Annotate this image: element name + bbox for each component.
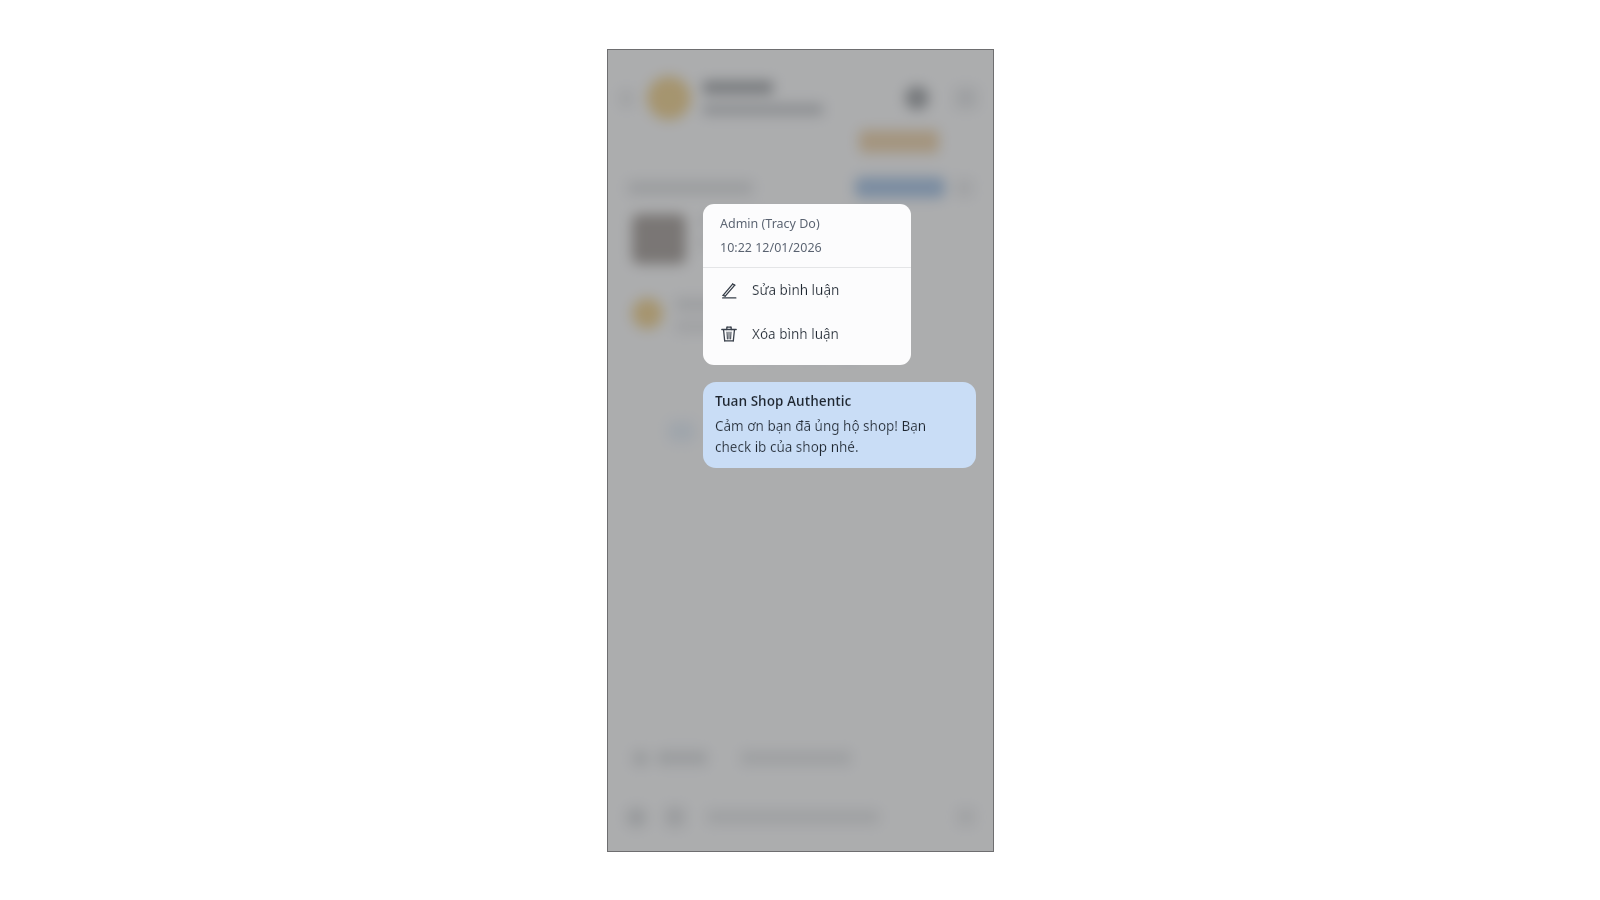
- staticText: Tuan Shop Authentic: [715, 392, 852, 410]
- staticText: 10:22 12/01/2026: [720, 239, 822, 256]
- staticText: Cảm ơn bạn đã ủng hộ shop! Bạn check ib …: [715, 417, 964, 456]
- button[interactable]: Edit: [703, 268, 911, 312]
- staticText: Sửa bình luận: [752, 281, 840, 299]
- other: Edit: [720, 281, 738, 299]
- button[interactable]: Delete: [703, 312, 911, 356]
- other: Delete: [720, 325, 738, 343]
- staticText: Admin (Tracy Do): [720, 215, 820, 232]
- staticText: Xóa bình luận: [752, 325, 839, 343]
- button[interactable]: Tuan Shop Authentic: [703, 382, 976, 468]
